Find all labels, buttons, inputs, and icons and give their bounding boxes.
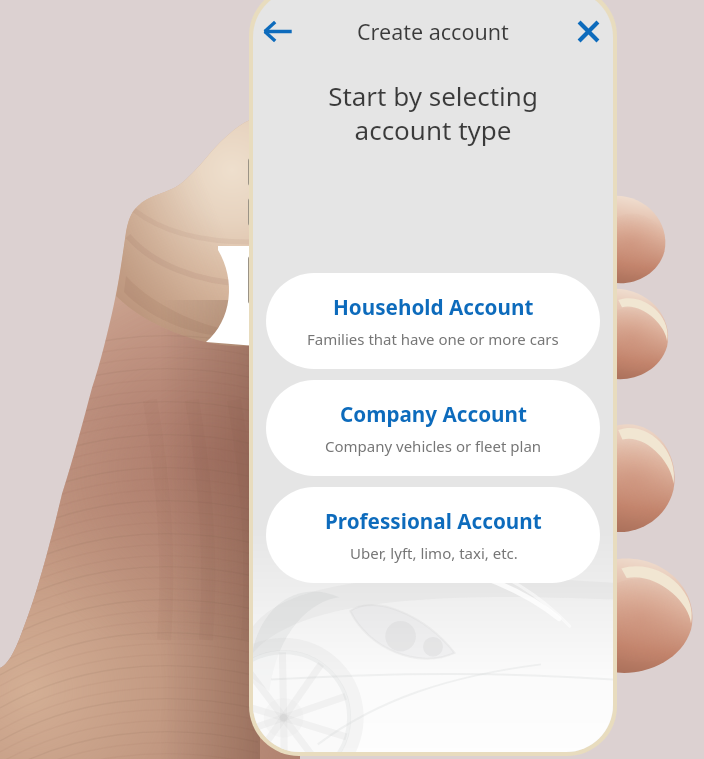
staticText: Household Account: [333, 293, 534, 321]
button[interactable]: Company Account: [266, 380, 600, 476]
button[interactable]: Professional Account: [266, 487, 600, 583]
button[interactable]: Household Account: [266, 273, 600, 369]
staticText: Create account: [357, 17, 509, 46]
staticText: Professional Account: [325, 507, 542, 535]
button[interactable]: Back: [253, 9, 301, 53]
staticText: Company vehicles or fleet plan: [325, 436, 542, 456]
staticText: Families that have one or more cars: [307, 329, 559, 349]
staticText: Uber, lyft, limo, taxi, etc.: [350, 543, 518, 563]
staticText: Company Account: [340, 400, 527, 428]
staticText: Start by selecting account type: [253, 78, 613, 147]
button[interactable]: Close: [565, 9, 611, 53]
